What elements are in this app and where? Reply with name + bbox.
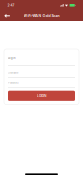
button[interactable]: LOGIN — [8, 91, 75, 101]
staticText: Password — [8, 81, 18, 84]
button[interactable]: Back — [0, 11, 17, 21]
staticText: Username — [8, 71, 18, 74]
staticText: WiFi-WAN Gold Scan — [23, 14, 59, 18]
staticText: LOGIN — [37, 94, 46, 98]
staticText: Login — [8, 57, 15, 60]
staticText: 2:47 — [7, 3, 14, 7]
